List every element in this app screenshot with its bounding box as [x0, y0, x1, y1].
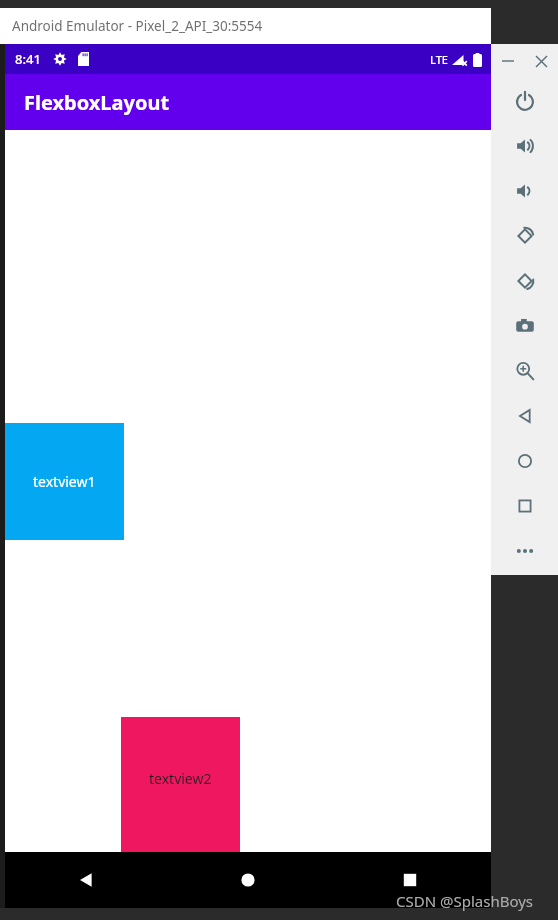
button[interactable]: Zoom: [491, 348, 558, 393]
button[interactable]: Screenshot: [491, 303, 558, 348]
staticText: textview1: [33, 472, 96, 491]
button[interactable]: Recents: [329, 852, 491, 908]
button[interactable]: Volume down: [491, 168, 558, 213]
button[interactable]: Back: [491, 393, 558, 438]
button[interactable]: Home: [491, 438, 558, 483]
button[interactable]: More: [491, 528, 558, 573]
button[interactable]: Minimize: [491, 44, 524, 78]
button[interactable]: Rotate left: [491, 213, 558, 258]
staticText: Android Emulator - Pixel_2_API_30:5554: [12, 17, 263, 35]
button[interactable]: Close: [524, 44, 558, 78]
button[interactable]: Volume up: [491, 123, 558, 168]
staticText: LTE: [430, 52, 448, 67]
staticText: FlexboxLayout: [24, 89, 170, 116]
button[interactable]: Overview: [491, 483, 558, 528]
button[interactable]: Home: [167, 852, 329, 908]
staticText: 8:41: [15, 50, 41, 68]
button[interactable]: textview2: [121, 717, 240, 852]
staticText: CSDN @SplashBoys: [396, 891, 534, 911]
button[interactable]: Back: [5, 852, 167, 908]
button[interactable]: Rotate right: [491, 258, 558, 303]
button[interactable]: textview1: [5, 423, 124, 540]
staticText: textview2: [149, 769, 212, 788]
button[interactable]: Power: [491, 78, 558, 123]
